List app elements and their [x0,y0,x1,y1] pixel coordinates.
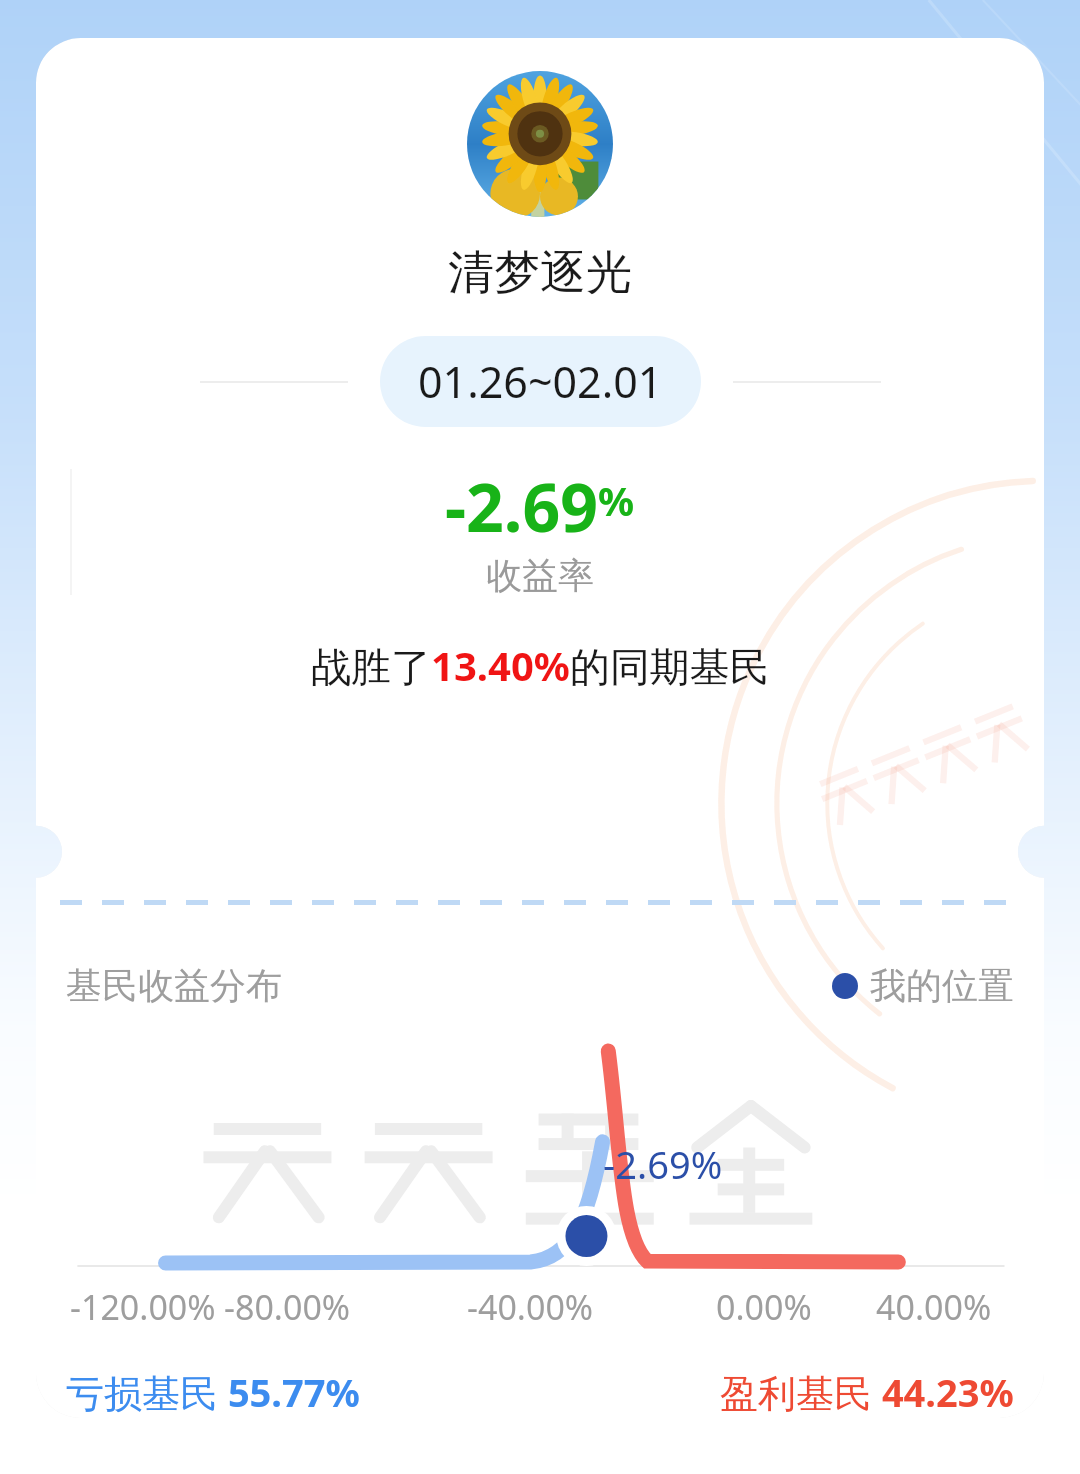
staticText: 盈利基民 44.23% [720,1366,1014,1418]
staticText: 基民收益分布 [66,963,282,1008]
staticText: -2.69% [445,461,635,551]
staticText: 0.00% [716,1284,812,1330]
staticText: 清梦逐光 [448,244,632,302]
button[interactable]: User avatar [460,64,620,224]
staticText: 战胜了13.40%的同期基民 [311,638,770,693]
staticText: -2.69% [603,1138,723,1190]
staticText: 亏损基民 55.77% [66,1366,360,1418]
staticText: 收益率 [486,553,594,598]
button[interactable]: 01.26~02.01 [380,336,701,427]
staticText: -80.00% [224,1284,351,1330]
button[interactable]: 我的位置 [832,963,1014,1008]
staticText: 我的位置 [870,963,1014,1008]
staticText: 40.00% [876,1284,992,1330]
staticText: -120.00% [70,1284,216,1330]
staticText: 01.26~02.01 [418,352,663,411]
staticText: -40.00% [467,1284,594,1330]
